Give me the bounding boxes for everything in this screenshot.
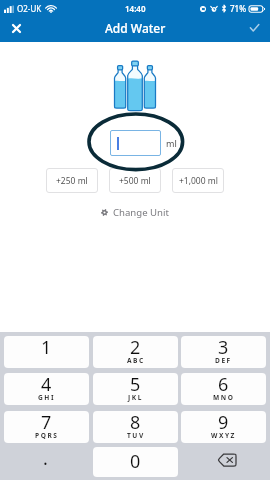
button[interactable]: 9	[181, 411, 266, 443]
staticText: ABC	[127, 356, 145, 365]
staticText: TUV	[127, 431, 145, 440]
button[interactable]: 1	[4, 336, 89, 368]
button[interactable]: 5	[93, 373, 178, 405]
staticText: +1,000 ml	[179, 175, 218, 187]
staticText: +250 ml	[56, 175, 88, 187]
staticText: Add Water	[105, 20, 166, 36]
staticText: PQRS	[35, 431, 59, 440]
staticText: O2-UK	[17, 3, 42, 14]
button[interactable]	[110, 130, 161, 156]
button[interactable]: Change Unit	[97, 204, 173, 221]
staticText: 4	[41, 372, 52, 397]
staticText: WXYZ	[211, 431, 236, 440]
staticText: JKL	[128, 393, 143, 402]
staticText: 0	[130, 449, 141, 474]
button[interactable]: 2	[93, 336, 178, 368]
button[interactable]: Confirm	[238, 12, 270, 44]
button[interactable]: Close	[0, 12, 32, 44]
button[interactable]: +1,000 ml	[172, 168, 224, 193]
staticText: 2	[130, 335, 141, 360]
staticText: 6	[218, 372, 229, 397]
staticText: GHI	[38, 393, 56, 402]
staticText: MNO	[213, 393, 235, 402]
staticText: 14:40	[125, 3, 146, 14]
button[interactable]: 3	[181, 336, 266, 368]
button[interactable]: 0	[93, 447, 178, 477]
staticText: ml	[166, 137, 177, 149]
button[interactable]: 8	[93, 411, 178, 443]
button[interactable]: +250 ml	[46, 168, 98, 193]
staticText: +500 ml	[119, 175, 151, 187]
staticText: Change Unit	[113, 206, 169, 219]
staticText: 7	[41, 410, 52, 435]
button[interactable]: 6	[181, 373, 266, 405]
staticText: 8	[130, 410, 141, 435]
staticText: 3	[218, 335, 229, 360]
staticText: .	[43, 446, 48, 471]
staticText: 9	[218, 410, 229, 435]
staticText: 5	[130, 372, 141, 397]
button[interactable]: .	[4, 447, 89, 477]
button[interactable]: 7	[4, 411, 89, 443]
staticText: 71%	[230, 3, 246, 14]
staticText: DEF	[215, 356, 232, 365]
button[interactable]: +500 ml	[109, 168, 161, 193]
staticText: 1	[41, 335, 52, 360]
button[interactable]: 4	[4, 373, 89, 405]
button[interactable]: Backspace	[181, 447, 266, 477]
